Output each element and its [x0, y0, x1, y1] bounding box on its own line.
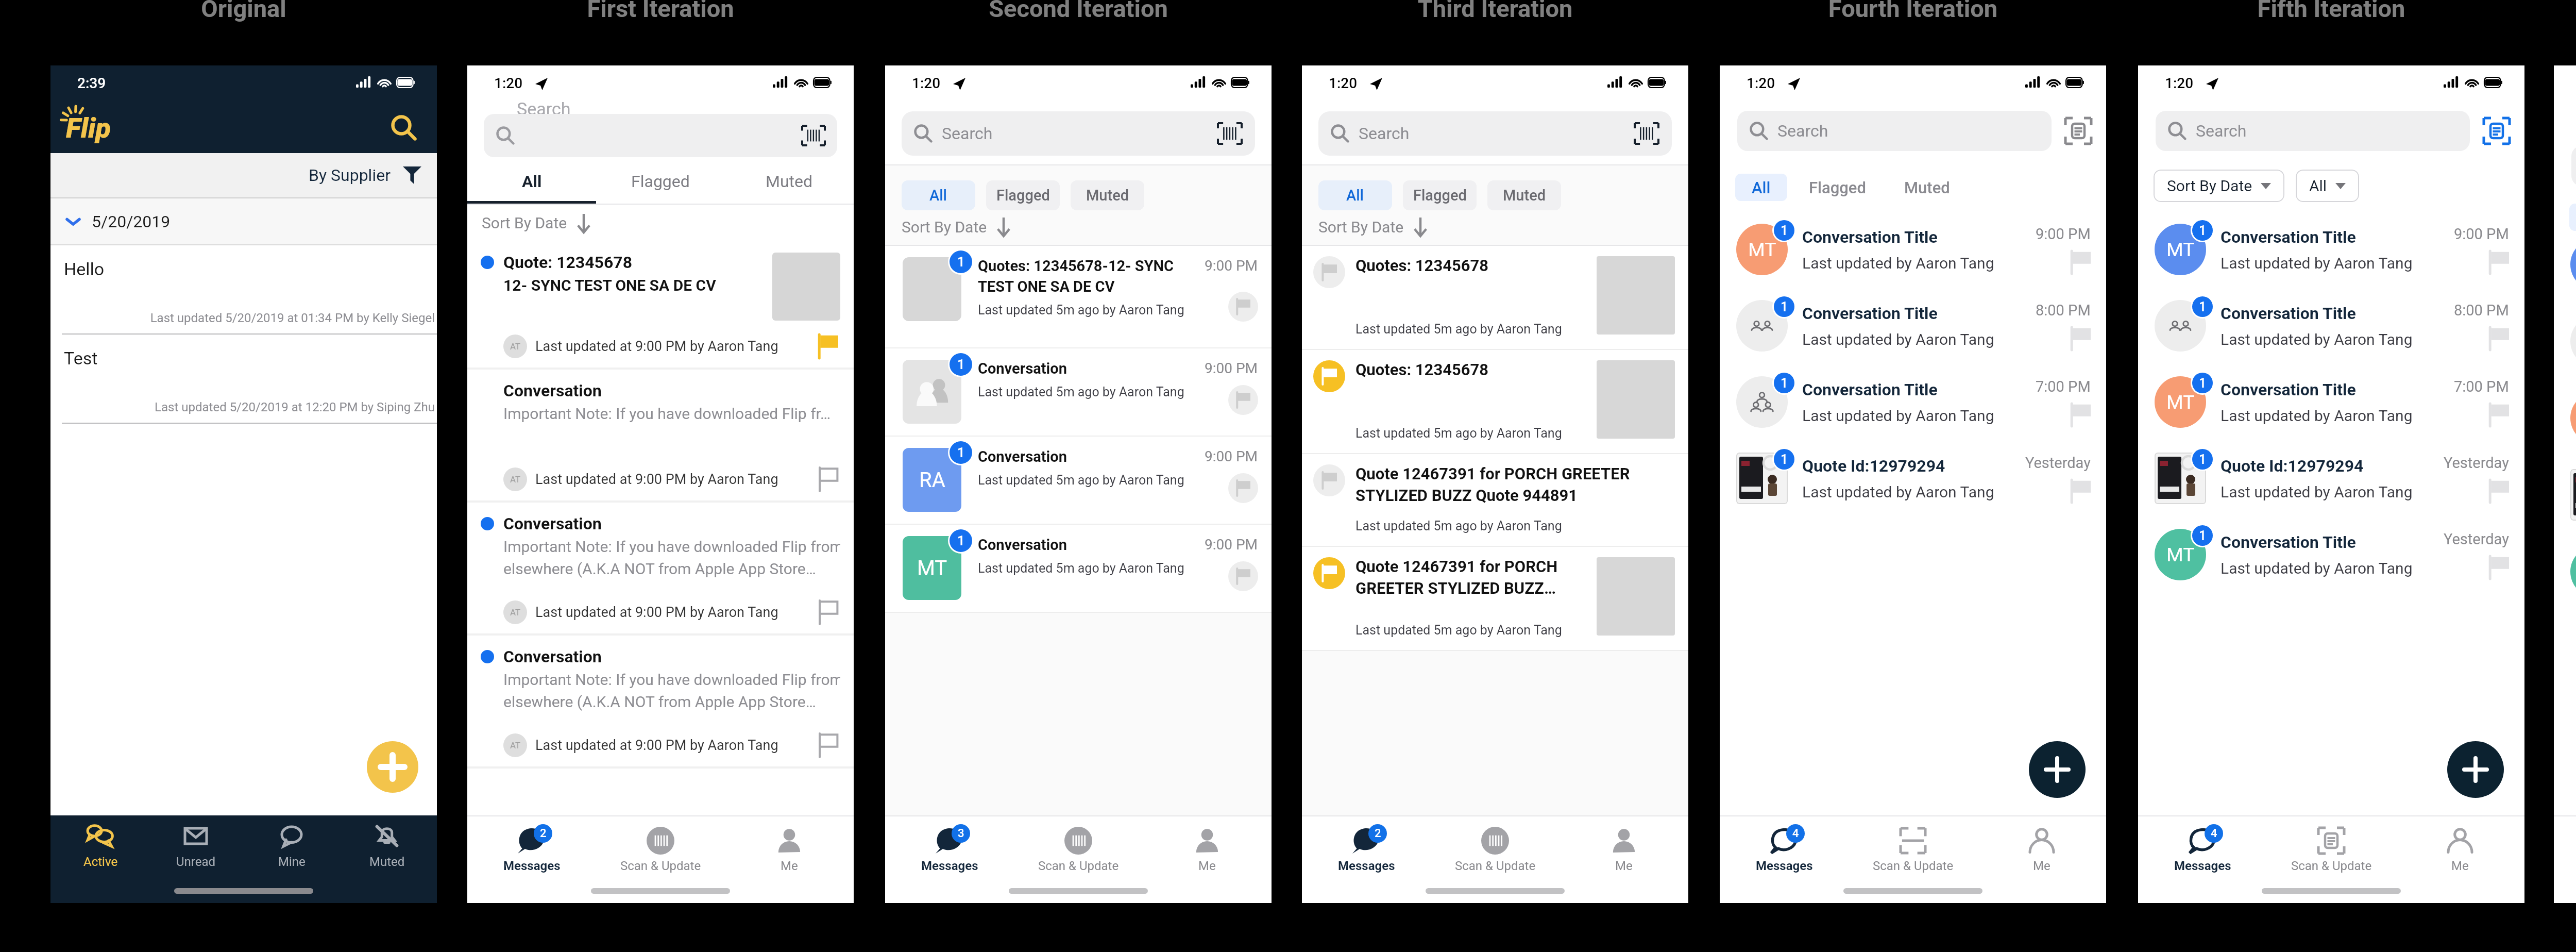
staticText: Yesterday	[2025, 454, 2091, 472]
button[interactable]: Scan & Update	[1431, 826, 1560, 873]
staticText: Conversation Title	[2221, 227, 2356, 247]
button[interactable]: Search	[1318, 111, 1672, 156]
button[interactable]: Conversation	[467, 503, 854, 636]
button[interactable]: Quote: 12345678	[467, 241, 854, 370]
button[interactable]: MT	[2155, 516, 2509, 593]
button[interactable]: Conversation	[467, 636, 854, 769]
staticText: 5/20/2019	[92, 212, 171, 231]
staticText: Quotes: 12345678-12- SYNC TEST ONE SA DE…	[978, 257, 1174, 295]
button[interactable]: Quotes: 12345678	[1302, 350, 1688, 454]
button[interactable]: Conversation	[467, 370, 854, 503]
staticText: Fifth Iteration	[2099, 0, 2563, 23]
button[interactable]: 1	[1736, 364, 2091, 440]
button[interactable]: Sort By Date	[1318, 218, 1428, 236]
button[interactable]: MT	[2554, 392, 2576, 469]
staticText: Messages	[2174, 859, 2231, 873]
button[interactable]: Scan document	[2482, 116, 2511, 145]
button[interactable]: MT	[2155, 364, 2509, 440]
button[interactable]: Unread	[150, 823, 242, 869]
button[interactable]: Search	[2571, 146, 2576, 186]
button[interactable]: Flagged	[1792, 174, 1883, 201]
staticText: Last updated 5m ago by Aaron Tang	[978, 561, 1184, 576]
button[interactable]: MT	[2554, 239, 2576, 315]
button[interactable]: 1	[885, 348, 1272, 437]
button[interactable]: Muted	[341, 823, 433, 869]
button[interactable]: Create	[367, 741, 418, 793]
button[interactable]: 2	[1302, 826, 1431, 873]
button[interactable]: 1	[885, 246, 1272, 348]
button[interactable]: All	[2569, 204, 2576, 231]
button[interactable]: Quotes: 12345678	[1302, 246, 1688, 350]
button[interactable]: Scan & Update	[1849, 826, 1977, 873]
button[interactable]: All	[902, 180, 975, 210]
staticText: Flagged	[996, 187, 1050, 204]
button[interactable]: Scan barcode	[802, 124, 825, 147]
button[interactable]: Flagged	[596, 159, 725, 204]
button[interactable]: 2	[467, 826, 596, 873]
button[interactable]: 5/20/2019	[50, 198, 437, 244]
button[interactable]: Sort By Date	[482, 205, 854, 241]
button[interactable]: Scan & Update	[1014, 826, 1143, 873]
button[interactable]: RA	[885, 437, 1272, 525]
button[interactable]: Scan barcode	[1218, 122, 1242, 145]
staticText: Conversation	[503, 647, 602, 666]
button[interactable]: Me	[1143, 826, 1272, 873]
button[interactable]: Quote 12467391 for PORCH GREETER STYLIZE…	[1302, 547, 1688, 651]
button[interactable]: 1	[2155, 288, 2509, 364]
button[interactable]: Muted	[725, 159, 854, 204]
button[interactable]: Quote 12467391 for PORCH GREETER STYLIZE…	[1302, 454, 1688, 547]
button[interactable]: Hello	[50, 245, 437, 335]
button[interactable]: Search	[902, 111, 1255, 156]
button[interactable]: Test	[50, 335, 437, 424]
staticText: First Iteration	[429, 0, 892, 23]
staticText: Second Iteration	[846, 0, 1310, 23]
button[interactable]: Sort By Date	[902, 218, 1011, 236]
button[interactable]: Scan barcode	[484, 114, 837, 157]
button[interactable]: 1	[1736, 440, 2091, 516]
button[interactable]: Create	[2029, 741, 2086, 798]
button[interactable]: Search	[386, 110, 421, 145]
button[interactable]: By Supplier	[309, 165, 421, 185]
button[interactable]: Me	[725, 826, 854, 873]
button[interactable]: Mine	[246, 823, 337, 869]
button[interactable]: 4	[1720, 826, 1849, 873]
button[interactable]: Muted	[1888, 174, 1967, 201]
button[interactable]: 1	[2554, 469, 2576, 546]
button[interactable]: MT	[885, 525, 1272, 613]
button[interactable]: Create	[2447, 741, 2504, 798]
staticText: All	[1752, 178, 1771, 197]
button[interactable]: Scan & Update	[2267, 826, 2396, 873]
button[interactable]: Scan document	[2064, 116, 2093, 145]
button[interactable]: MT	[1736, 211, 2091, 288]
staticText: Quote 12467391 for PORCH GREETER STYLIZE…	[1355, 464, 1630, 505]
button[interactable]: MT	[2554, 546, 2576, 623]
button[interactable]: Me	[1977, 826, 2106, 873]
button[interactable]: 4	[2138, 826, 2267, 873]
button[interactable]: All	[1735, 174, 1787, 201]
button[interactable]: Me	[2396, 826, 2524, 873]
button[interactable]: 1	[2155, 440, 2509, 516]
button[interactable]: Me	[1560, 826, 1688, 873]
staticText: Messages	[921, 859, 978, 873]
button[interactable]: MT	[2155, 211, 2509, 288]
button[interactable]: Muted	[1071, 180, 1144, 210]
button[interactable]: All	[467, 159, 596, 204]
staticText: Muted	[1904, 178, 1950, 197]
button[interactable]: Active	[55, 823, 146, 869]
staticText: Search	[2196, 121, 2247, 141]
button[interactable]: All	[1318, 180, 1392, 210]
button[interactable]: Scan & Update	[596, 826, 725, 873]
staticText: 1	[1781, 299, 1788, 314]
button[interactable]: 1	[1736, 288, 2091, 364]
button[interactable]: 1	[2554, 315, 2576, 392]
button[interactable]: All	[2296, 170, 2359, 202]
button[interactable]: Search	[2156, 111, 2470, 151]
button[interactable]: Search	[1737, 111, 2052, 151]
button[interactable]: Scan barcode	[1635, 122, 1658, 145]
button[interactable]: Flagged	[986, 180, 1060, 210]
button[interactable]: Sort By Date	[2154, 170, 2284, 202]
button[interactable]: Muted	[1487, 180, 1561, 210]
button[interactable]: Flagged	[1403, 180, 1477, 210]
button[interactable]: 3	[885, 826, 1014, 873]
